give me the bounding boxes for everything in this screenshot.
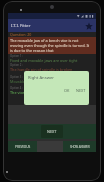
button[interactable]: NEXT [76,88,86,93]
staticText: NEXT [76,88,86,93]
staticText: The handle pin of spindle is broken [10,67,73,72]
staticText: Option 4 : [10,86,23,90]
button[interactable]: Question: 20 [8,32,96,37]
staticText: Question: 20 [10,32,32,37]
staticText: I.T.I. Fitter [11,23,31,29]
staticText: SHOW ANSWER [70,145,90,149]
staticText: Option 1 : [10,54,23,58]
staticText: Option 3 : [10,75,23,79]
button[interactable]: SHOW ANSWER [63,141,96,152]
button[interactable]: PREVIOUS [8,141,37,152]
staticText: NEXT [47,129,57,134]
staticText: Right Answer [28,75,55,81]
staticText: The movable jaw of a bench vice is not m… [10,38,90,53]
staticText: The vice jaw pin is broken [10,90,56,95]
staticText: Movable jaw plate is worn out [10,79,64,84]
button[interactable]: NEXT [8,124,96,139]
staticText: Option 2 : [10,63,23,67]
staticText: OK [64,88,70,93]
staticText: Fixed and movable jaws are over tight [10,58,78,63]
staticText: PREVIOUS [15,145,31,149]
button[interactable]: OK [64,88,70,93]
